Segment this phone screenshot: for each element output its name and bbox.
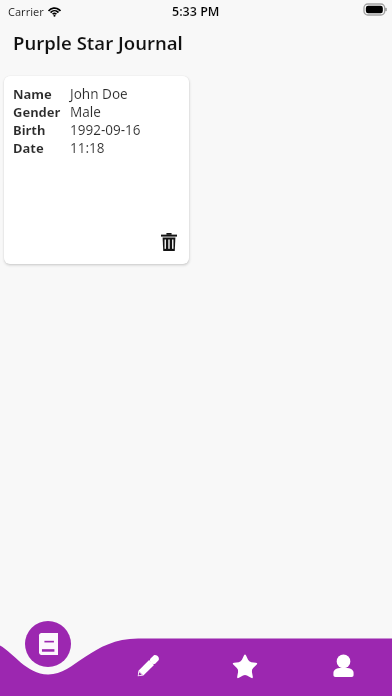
staticText: 11:18	[70, 139, 105, 157]
staticText: Gender	[13, 103, 70, 121]
button[interactable]: Profile	[294, 646, 392, 686]
staticText: Purple Star Journal	[13, 30, 183, 55]
staticText: John Doe	[70, 85, 128, 103]
button[interactable]: Delete	[161, 233, 177, 251]
button[interactable]: Name	[4, 76, 189, 264]
staticText: 1992-09-16	[70, 121, 141, 139]
button[interactable]: Journal	[25, 621, 71, 667]
button[interactable]: Edit	[98, 646, 196, 686]
staticText: 5:33 PM	[172, 3, 220, 20]
staticText: Carrier	[8, 4, 44, 19]
staticText: Date	[13, 139, 70, 157]
staticText: Birth	[13, 121, 70, 139]
staticText: Male	[70, 103, 101, 121]
staticText: Name	[13, 85, 70, 103]
button[interactable]: Favorites	[196, 646, 294, 686]
